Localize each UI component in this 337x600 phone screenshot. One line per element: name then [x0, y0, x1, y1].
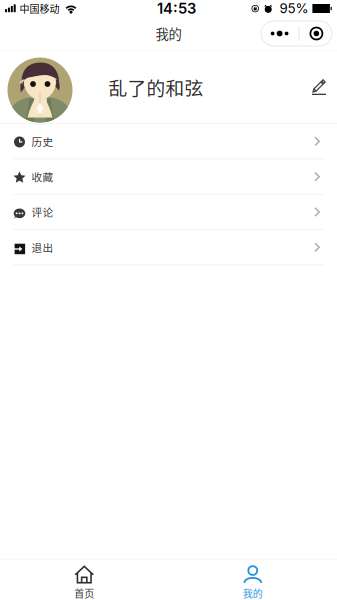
button[interactable]: 收藏	[0, 159, 337, 195]
staticText: 历史	[31, 134, 53, 149]
staticText: 我的	[243, 586, 263, 600]
staticText: 评论	[31, 204, 53, 220]
staticText: 14:53	[157, 0, 196, 17]
staticText: 我的	[155, 24, 181, 43]
button[interactable]: Close mini program	[306, 21, 326, 46]
staticText: 中国移动	[19, 1, 59, 16]
button[interactable]: 评论	[0, 195, 337, 230]
staticText: 乱了的和弦	[108, 73, 203, 100]
button[interactable]: 我的	[168, 560, 337, 600]
staticText: 首页	[74, 586, 94, 600]
staticText: 95%	[279, 0, 308, 16]
button[interactable]: More options	[268, 21, 292, 46]
button[interactable]: 退出	[0, 230, 337, 265]
staticText: 收藏	[31, 169, 53, 184]
staticText: 退出	[31, 239, 53, 255]
button[interactable]: Edit profile	[312, 79, 326, 95]
button[interactable]: 历史	[0, 124, 337, 159]
button[interactable]: 首页	[0, 560, 168, 600]
